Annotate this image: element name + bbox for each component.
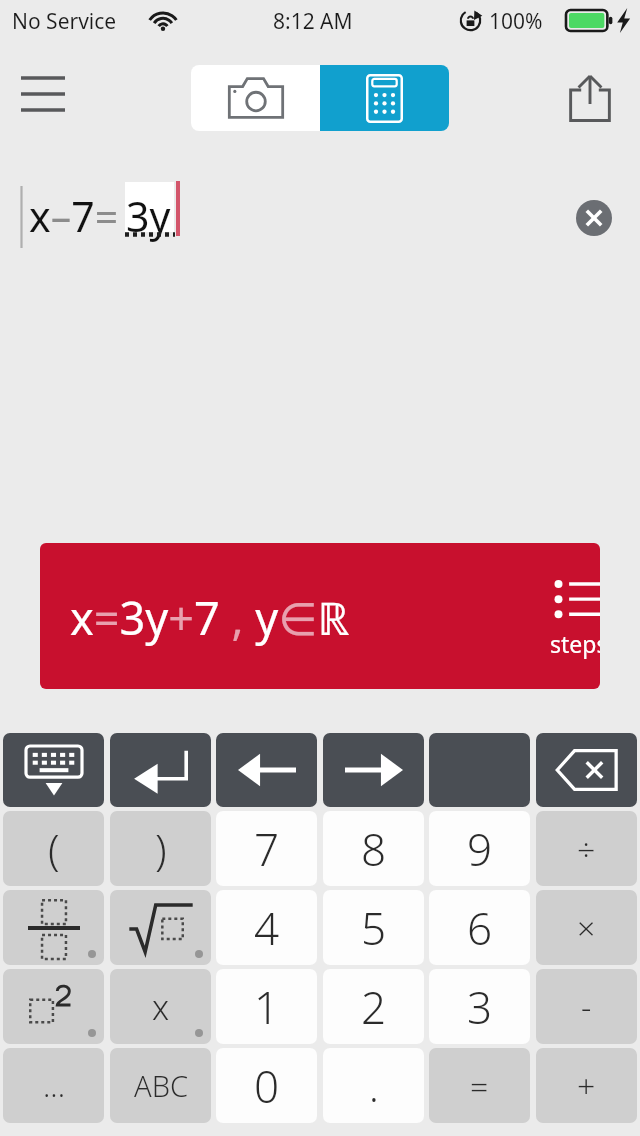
staticText: ( bbox=[48, 820, 60, 877]
staticText: ) bbox=[155, 820, 167, 877]
staticText: x=3y+7 , y∈ℝ bbox=[70, 587, 350, 648]
button[interactable]: sq bbox=[3, 969, 104, 1044]
staticText: 3y bbox=[126, 188, 171, 244]
button[interactable]: = bbox=[429, 1048, 530, 1123]
button[interactable]: 0 bbox=[216, 1048, 317, 1123]
button[interactable]: Enter bbox=[110, 733, 211, 807]
button[interactable]: Menu bbox=[8, 60, 82, 136]
staticText: 9 bbox=[467, 819, 493, 879]
button[interactable]: sqrt bbox=[110, 890, 211, 965]
staticText: ABC bbox=[134, 1066, 188, 1105]
button[interactable]: 4 bbox=[216, 890, 317, 965]
button[interactable]: ÷ bbox=[536, 811, 637, 886]
staticText: No Service bbox=[12, 7, 117, 36]
button[interactable]: 6 bbox=[429, 890, 530, 965]
staticText: x–7= bbox=[29, 188, 119, 244]
button[interactable]: 2 bbox=[323, 969, 424, 1044]
button[interactable]: ABC bbox=[110, 1048, 211, 1123]
staticText: 3 bbox=[467, 977, 493, 1037]
button[interactable]: 3 bbox=[429, 969, 530, 1044]
button[interactable]: ... bbox=[3, 1048, 104, 1123]
staticText: + bbox=[577, 1064, 596, 1108]
button[interactable]: - bbox=[536, 969, 637, 1044]
button[interactable]: + bbox=[536, 1048, 637, 1123]
button[interactable]: Clear bbox=[576, 200, 612, 236]
button[interactable]: ( bbox=[3, 811, 104, 886]
button[interactable]: Share bbox=[552, 60, 628, 136]
staticText: = bbox=[470, 1064, 489, 1108]
button[interactable]: Delete bbox=[536, 733, 637, 807]
staticText: ÷ bbox=[577, 827, 596, 871]
button[interactable]: 5 bbox=[323, 890, 424, 965]
button[interactable]: 7 bbox=[216, 811, 317, 886]
staticText: 0 bbox=[254, 1056, 280, 1116]
staticText: 8 bbox=[361, 819, 387, 879]
button[interactable]: Steps bbox=[528, 579, 600, 671]
staticText: ... bbox=[43, 1065, 65, 1106]
button[interactable]: Hide keyboard bbox=[3, 733, 104, 807]
button[interactable]: Calculator mode bbox=[320, 65, 449, 131]
staticText: 8:12 AM bbox=[273, 7, 353, 36]
button[interactable]: 8 bbox=[323, 811, 424, 886]
staticText: 1 bbox=[254, 977, 280, 1037]
button[interactable]: . bbox=[323, 1048, 424, 1123]
staticText: x bbox=[152, 984, 170, 1030]
button[interactable]: Camera mode bbox=[191, 65, 320, 131]
staticText: 4 bbox=[254, 898, 280, 958]
staticText: 2 bbox=[361, 977, 387, 1037]
staticText: 6 bbox=[467, 898, 493, 958]
button[interactable]: × bbox=[536, 890, 637, 965]
staticText: × bbox=[577, 906, 596, 950]
button[interactable]: frac bbox=[3, 890, 104, 965]
staticText: 100% bbox=[489, 7, 543, 36]
staticText: steps bbox=[550, 628, 600, 659]
button[interactable]: x=3y+7 , y∈ℝ bbox=[40, 543, 600, 689]
button[interactable]: 9 bbox=[429, 811, 530, 886]
staticText: 5 bbox=[361, 898, 387, 958]
button[interactable]: 1 bbox=[216, 969, 317, 1044]
staticText: - bbox=[581, 985, 592, 1029]
staticText: . bbox=[369, 1059, 379, 1113]
button[interactable]: ) bbox=[110, 811, 211, 886]
button[interactable]: x bbox=[110, 969, 211, 1044]
button[interactable]: Blank bbox=[429, 733, 530, 807]
button[interactable]: Right bbox=[323, 733, 424, 807]
button[interactable]: Left bbox=[216, 733, 317, 807]
staticText: 7 bbox=[254, 819, 280, 879]
